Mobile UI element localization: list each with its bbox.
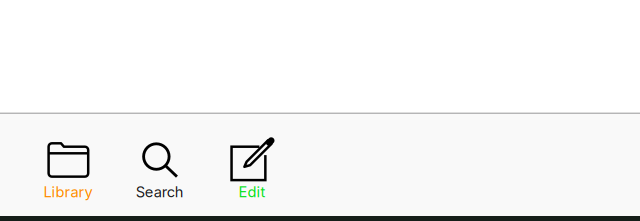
staticText: Library [43,183,92,201]
button[interactable]: Library [22,134,114,216]
staticText: Edit [238,183,265,201]
button[interactable]: Edit [206,134,298,216]
staticText: Search [136,183,184,201]
button[interactable]: Search [114,134,206,216]
